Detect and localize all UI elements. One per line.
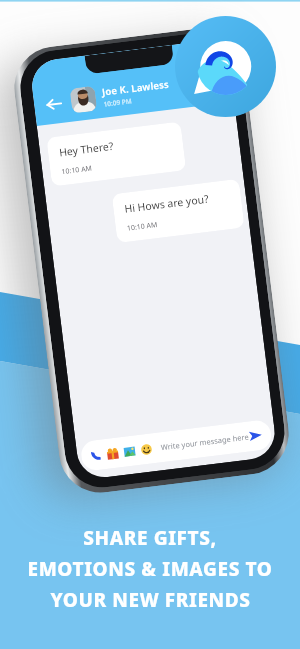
staticText: Write your message here [160,431,250,452]
staticText: Hi Hows are you? [124,192,210,216]
button[interactable]: Back [41,92,65,116]
staticText: SHARE GIFTS, [83,525,217,551]
button[interactable]: Hi Hows are you? [112,179,245,243]
staticText: Joe K. Lawless [101,77,170,99]
staticText: 10:10 AM [126,220,158,234]
staticText: Hey There? [58,139,115,159]
button[interactable]: Write your message here [80,419,273,472]
button[interactable]: Hey There? [46,121,186,187]
staticText: YOUR NEW FRIENDS [50,587,251,613]
button[interactable]: Profile photo [69,86,97,114]
staticText: EMOTIONS & IMAGES TO [27,556,273,582]
button[interactable]: App icon [175,16,276,117]
button[interactable]: Send [248,427,263,444]
staticText: 10:09 PM [103,96,133,109]
staticText: 10:10 AM [61,164,93,177]
